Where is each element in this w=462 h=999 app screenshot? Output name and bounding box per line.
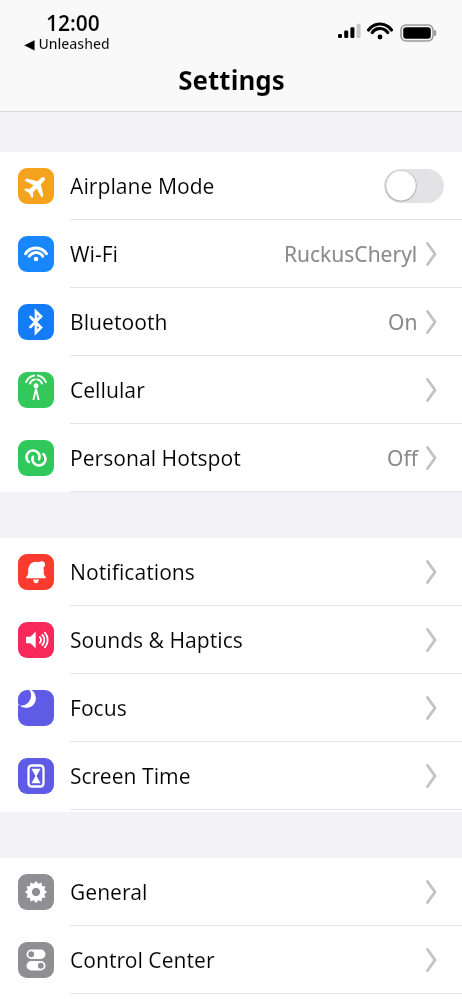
- staticText: Cellular: [70, 376, 145, 405]
- staticText: General: [70, 878, 148, 907]
- button[interactable]: Wi-Fi: [0, 220, 462, 288]
- button[interactable]: Focus: [0, 674, 462, 742]
- staticText: Focus: [70, 694, 127, 723]
- staticText: Screen Time: [70, 762, 191, 791]
- button[interactable]: Control Center: [0, 926, 462, 994]
- button[interactable]: Airplane Mode toggle: [384, 169, 444, 203]
- staticText: Sounds & Haptics: [70, 626, 243, 655]
- staticText: Bluetooth: [70, 308, 168, 337]
- staticText: Personal Hotspot: [70, 444, 241, 473]
- staticText: Airplane Mode: [70, 172, 215, 201]
- button[interactable]: Sounds & Haptics: [0, 606, 462, 674]
- button[interactable]: Bluetooth: [0, 288, 462, 356]
- button[interactable]: Cellular: [0, 356, 462, 424]
- staticText: RuckusCheryl: [284, 240, 418, 269]
- staticText: Off: [387, 444, 418, 473]
- staticText: Wi-Fi: [70, 240, 119, 269]
- staticText: ◀ Unleashed: [24, 34, 110, 53]
- button[interactable]: Personal Hotspot: [0, 424, 462, 492]
- button[interactable]: General: [0, 858, 462, 926]
- staticText: Settings: [178, 62, 285, 97]
- button[interactable]: Notifications: [0, 538, 462, 606]
- staticText: Notifications: [70, 558, 195, 587]
- button[interactable]: Airplane Mode: [0, 152, 462, 220]
- staticText: On: [388, 308, 418, 337]
- button[interactable]: Screen Time: [0, 742, 462, 810]
- staticText: Control Center: [70, 946, 215, 975]
- staticText: 12:00: [46, 9, 100, 38]
